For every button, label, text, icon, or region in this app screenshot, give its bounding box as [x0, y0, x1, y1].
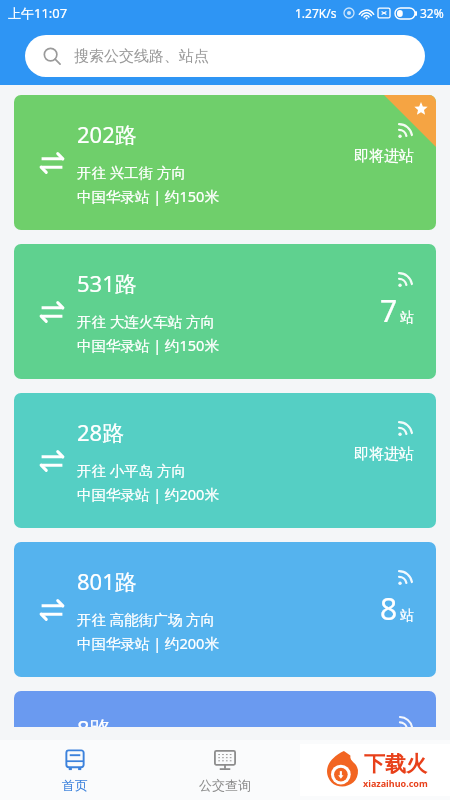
- other: 实时信号: [398, 715, 414, 727]
- staticText: 开往 大连火车站 方向: [77, 311, 216, 331]
- staticText: 站: [400, 309, 414, 327]
- staticText: 上午11:07: [8, 4, 68, 22]
- button[interactable]: 公交查询: [150, 740, 300, 800]
- button[interactable]: 首页: [0, 740, 150, 800]
- staticText: 中国华录站 | 约150米: [77, 335, 219, 355]
- staticText: 开往 高能街广场 方向: [77, 609, 216, 629]
- staticText: 即将进站: [354, 147, 414, 166]
- staticText: 即将进站: [354, 445, 414, 464]
- button[interactable]: 28路: [14, 393, 436, 528]
- staticText: 开往 小平岛 方向: [77, 460, 187, 480]
- staticText: 32%: [420, 5, 444, 21]
- button[interactable]: 搜索公交线路、站点: [25, 35, 425, 77]
- button[interactable]: 202路: [14, 95, 436, 230]
- staticText: 28路: [77, 417, 125, 447]
- staticText: 8路: [77, 713, 112, 727]
- other: 实时信号: [397, 122, 414, 139]
- staticText: 202路: [77, 119, 137, 149]
- staticText: 8: [380, 588, 398, 629]
- staticText: 站: [400, 607, 414, 625]
- staticText: 首页: [62, 777, 88, 793]
- staticText: 531路: [77, 268, 137, 298]
- button[interactable]: 8路: [14, 691, 436, 727]
- staticText: 中国华录站 | 约150米: [77, 186, 219, 206]
- other: 公交查询: [213, 748, 237, 772]
- other: 实时信号: [397, 569, 414, 586]
- staticText: 7: [380, 290, 398, 331]
- staticText: 801路: [77, 566, 137, 596]
- staticText: xiazaihuo.com: [363, 777, 428, 789]
- staticText: 开往 兴工街 方向: [77, 162, 187, 182]
- staticText: 搜索公交线路、站点: [74, 47, 209, 66]
- button[interactable]: 531路: [14, 244, 436, 379]
- staticText: 1.27K/s: [295, 5, 337, 21]
- staticText: 中国华录站 | 约200米: [77, 633, 219, 653]
- staticText: 中国华录站 | 约200米: [77, 484, 219, 504]
- staticText: 公交查询: [199, 777, 251, 793]
- other: 实时信号: [397, 271, 414, 288]
- other: 实时信号: [397, 420, 414, 437]
- staticText: 下载火: [364, 751, 427, 777]
- other: 首页: [63, 748, 87, 772]
- button[interactable]: 801路: [14, 542, 436, 677]
